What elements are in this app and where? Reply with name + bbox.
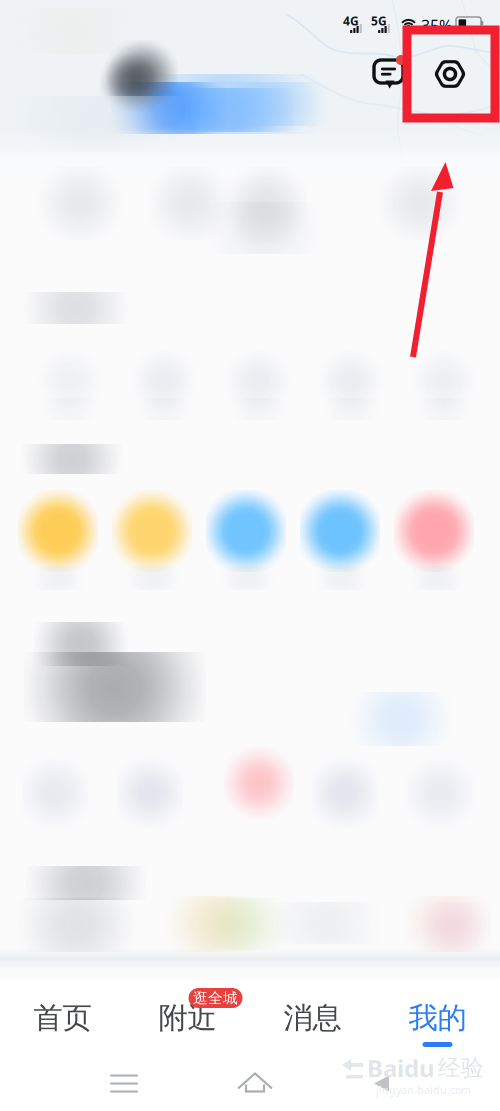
staticText: 35% — [421, 15, 452, 36]
button[interactable]: 附近 — [125, 980, 250, 1056]
button[interactable]: Back — [358, 1056, 414, 1110]
staticText: 经验 — [438, 1054, 484, 1082]
staticText: 首页 — [33, 1000, 91, 1036]
button[interactable]: Messages — [372, 56, 408, 92]
staticText: Baidu — [367, 1052, 435, 1084]
button[interactable]: 首页 — [0, 980, 125, 1056]
staticText: 逛全城 — [193, 989, 238, 1007]
staticText: jingyan.baidu.com — [376, 1083, 471, 1097]
staticText: 5G — [371, 13, 387, 29]
button[interactable]: 消息 — [250, 980, 375, 1056]
button[interactable]: Home — [227, 1056, 283, 1110]
staticText: 附近 — [158, 1000, 216, 1036]
staticText: 消息 — [283, 1000, 341, 1036]
button[interactable]: 我的 — [375, 980, 500, 1056]
staticText: 4G — [343, 13, 359, 29]
button[interactable]: Recents — [96, 1056, 152, 1110]
button[interactable]: Settings — [430, 54, 470, 94]
staticText: 我的 — [408, 1000, 466, 1036]
